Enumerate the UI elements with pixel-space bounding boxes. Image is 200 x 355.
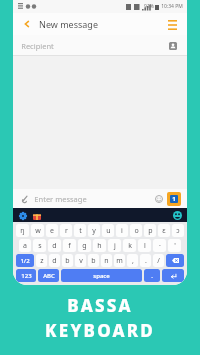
- staticText: b: [91, 256, 96, 266]
- staticText: KEYBOARD: [45, 319, 155, 342]
- button[interactable]: ': [168, 239, 181, 252]
- button[interactable]: k: [123, 239, 136, 252]
- button[interactable]: v: [75, 254, 86, 267]
- button[interactable]: /: [153, 254, 164, 267]
- button[interactable]: Emoji keyboard: [171, 209, 183, 221]
- staticText: s: [38, 241, 42, 251]
- staticText: space: [93, 272, 110, 280]
- staticText: r: [65, 226, 68, 236]
- staticText: e: [50, 226, 54, 236]
- button[interactable]: m: [114, 254, 125, 267]
- staticText: o: [134, 226, 139, 236]
- staticText: p: [148, 226, 153, 236]
- button[interactable]: Contacts: [167, 40, 179, 52]
- staticText: l: [144, 241, 146, 251]
- button[interactable]: r: [60, 224, 72, 237]
- button[interactable]: n: [101, 254, 112, 267]
- staticText: BASSA: [67, 294, 133, 317]
- staticText: ŋ: [20, 226, 25, 236]
- staticText: .: [145, 256, 147, 266]
- button[interactable]: ŋ: [16, 224, 29, 237]
- button[interactable]: 123: [16, 269, 36, 282]
- button[interactable]: d: [48, 239, 61, 252]
- button[interactable]: Send: [167, 192, 181, 206]
- button[interactable]: o: [130, 224, 142, 237]
- staticText: j: [114, 241, 116, 251]
- button[interactable]: .: [144, 269, 160, 282]
- button[interactable]: Settings: [17, 210, 28, 221]
- button[interactable]: Emoji: [152, 192, 165, 205]
- button[interactable]: Menu: [164, 16, 180, 32]
- button[interactable]: e: [46, 224, 58, 237]
- button[interactable]: ɔ: [172, 224, 184, 237]
- staticText: k: [128, 241, 132, 251]
- button[interactable]: space: [61, 269, 142, 282]
- button[interactable]: f: [63, 239, 76, 252]
- staticText: u: [106, 226, 111, 236]
- button[interactable]: j: [108, 239, 121, 252]
- staticText: 123: [21, 272, 32, 280]
- button[interactable]: b: [62, 254, 73, 267]
- button[interactable]: 1/2: [16, 254, 34, 267]
- staticText: z: [40, 256, 44, 266]
- staticText: g: [82, 241, 87, 251]
- button[interactable]: s: [33, 239, 46, 252]
- staticText: .: [151, 272, 153, 280]
- staticText: 10:34 PM: [161, 3, 183, 10]
- staticText: /: [157, 256, 160, 266]
- button[interactable]: ,: [127, 254, 138, 267]
- staticText: a: [23, 241, 27, 251]
- staticText: New message: [39, 18, 98, 30]
- staticText: w: [35, 226, 41, 236]
- button[interactable]: g: [78, 239, 91, 252]
- staticText: f: [68, 241, 71, 251]
- staticText: m: [116, 256, 123, 266]
- staticText: Recipient: [21, 41, 54, 51]
- button[interactable]: u: [102, 224, 114, 237]
- staticText: 1: [172, 195, 176, 203]
- button[interactable]: ɛ: [158, 224, 170, 237]
- staticText: ': [174, 241, 176, 251]
- staticText: ·: [159, 241, 161, 251]
- staticText: 1/2: [20, 257, 30, 265]
- button[interactable]: .: [140, 254, 151, 267]
- button[interactable]: z: [36, 254, 47, 267]
- staticText: y: [92, 226, 96, 236]
- button[interactable]: l: [138, 239, 151, 252]
- button[interactable]: ABC: [38, 269, 59, 282]
- button[interactable]: i: [116, 224, 128, 237]
- staticText: ɔ: [176, 226, 180, 236]
- staticText: h: [97, 241, 102, 251]
- button[interactable]: y: [88, 224, 100, 237]
- staticText: v: [79, 256, 83, 266]
- staticText: ,: [132, 256, 134, 266]
- button[interactable]: Enter: [162, 269, 184, 282]
- button[interactable]: t: [74, 224, 86, 237]
- button[interactable]: p: [144, 224, 156, 237]
- staticText: ɛ: [162, 226, 166, 236]
- button[interactable]: Themes: [31, 210, 42, 221]
- button[interactable]: a: [19, 239, 31, 252]
- button[interactable]: h: [93, 239, 106, 252]
- button[interactable]: Backspace: [166, 254, 184, 267]
- button[interactable]: Back: [20, 17, 34, 31]
- staticText: n: [104, 256, 109, 266]
- staticText: t: [79, 226, 82, 236]
- staticText: b: [65, 256, 70, 266]
- staticText: i: [121, 226, 123, 236]
- button[interactable]: Attach: [19, 193, 31, 205]
- staticText: Enter message: [34, 194, 87, 204]
- staticText: d: [52, 256, 57, 266]
- staticText: ABC: [43, 272, 55, 280]
- button[interactable]: d: [49, 254, 60, 267]
- button[interactable]: ·: [153, 239, 166, 252]
- staticText: 91%: [144, 3, 154, 10]
- button[interactable]: w: [31, 224, 44, 237]
- staticText: d: [52, 241, 57, 251]
- button[interactable]: b: [88, 254, 99, 267]
